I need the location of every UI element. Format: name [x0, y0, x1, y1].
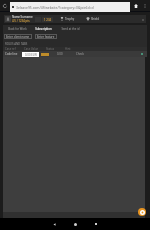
staticText: 1 234 — [44, 18, 52, 22]
staticText: Name Surname — [12, 15, 33, 19]
staticText: Enter feature — [37, 35, 55, 39]
button[interactable]: Recent apps — [90, 218, 102, 230]
button[interactable]: Record — [138, 208, 146, 216]
staticText: 3elsave95.com/4f/website/?category=0&joi… — [16, 5, 94, 10]
staticText: Check — [76, 52, 84, 56]
button[interactable]: Subscription — [31, 25, 55, 33]
staticText: Case Value — [24, 47, 46, 51]
button[interactable]: Enter feature — [35, 34, 57, 39]
staticText: Status — [46, 47, 65, 51]
staticText: Subscription — [35, 27, 52, 31]
staticText: Hint — [65, 47, 85, 51]
button[interactable]: Shield — [86, 17, 100, 21]
button[interactable]: Enter client name — [4, 34, 32, 39]
button[interactable]: More options — [140, 1, 149, 10]
button[interactable]: Back — [48, 218, 60, 230]
staticText: Trophy — [65, 17, 75, 21]
staticText: Send at the id — [61, 27, 80, 31]
button[interactable]: Close — [140, 17, 145, 22]
button[interactable]: 3elsave95.com/4f/website/?category=0&joi… — [10, 2, 130, 12]
button[interactable]: Reload — [0, 0, 10, 11]
staticText: Back for Work — [8, 27, 27, 31]
staticText: Enter client name — [6, 35, 30, 39]
staticText: 0.00 EUR — [25, 53, 37, 57]
staticText: Shield — [91, 17, 100, 21]
button[interactable]: Trophy — [60, 17, 75, 21]
button[interactable]: Send at the id — [55, 25, 85, 33]
staticText: 0.00 — [57, 52, 76, 56]
button[interactable]: Back for Work — [3, 25, 31, 33]
button[interactable]: Home — [69, 218, 81, 230]
staticText: Case ref — [5, 47, 24, 51]
button[interactable]: Home — [131, 1, 140, 10]
staticText: ROLES AND TABS — [5, 42, 28, 46]
staticText: Code line — [5, 52, 22, 56]
staticText: 4.5 / 1234 pts — [12, 19, 30, 23]
